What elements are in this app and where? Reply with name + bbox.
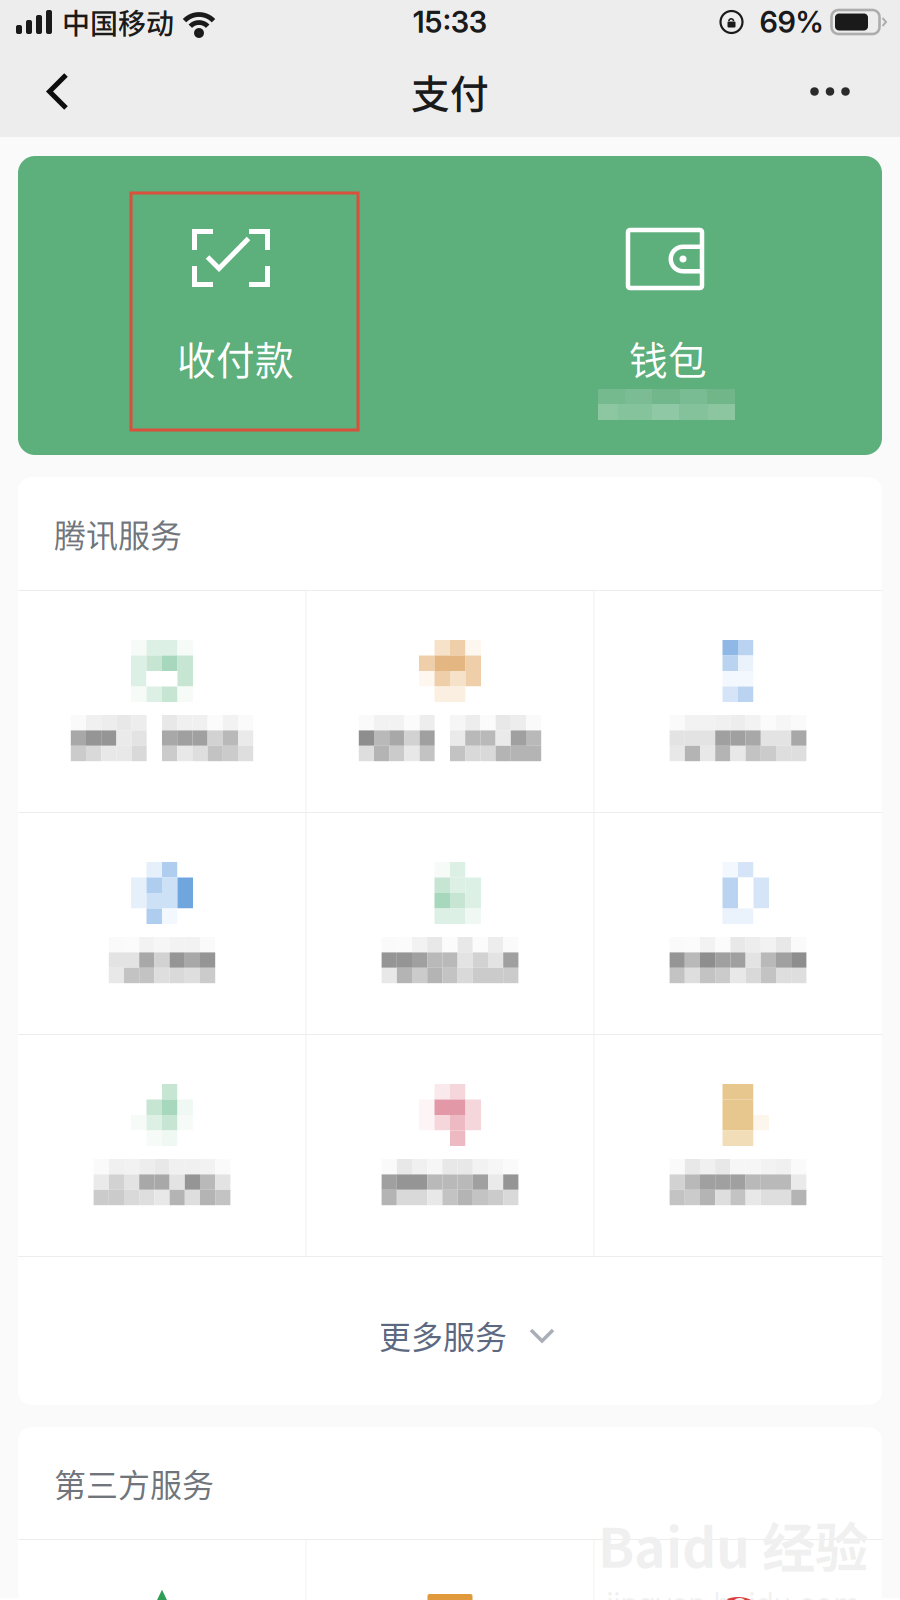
button[interactable]: 更多服务	[18, 1257, 882, 1405]
staticText: 腾讯服务	[54, 510, 182, 557]
button[interactable]: Back	[0, 52, 115, 130]
staticText: Baidu 经验	[598, 1506, 868, 1583]
button[interactable]	[306, 1035, 593, 1256]
button[interactable]: 钱包	[552, 193, 779, 430]
button[interactable]: Service	[594, 1540, 881, 1600]
staticText: 支付	[411, 63, 489, 119]
button[interactable]	[594, 591, 881, 812]
staticText: 第三方服务	[54, 1460, 214, 1506]
button[interactable]	[306, 813, 593, 1034]
button[interactable]	[594, 813, 881, 1034]
button[interactable]	[306, 591, 593, 812]
staticText: 69%	[759, 4, 823, 40]
staticText: 中国移动	[62, 2, 174, 42]
staticText: 15:33	[413, 4, 487, 40]
button[interactable]	[18, 813, 305, 1034]
button[interactable]: Service	[306, 1540, 593, 1600]
button[interactable]: Service	[18, 1540, 305, 1600]
button[interactable]	[594, 1035, 881, 1256]
button[interactable]: More	[791, 52, 900, 130]
staticText: 钱包	[629, 330, 707, 386]
button[interactable]: 收付款	[131, 193, 358, 430]
staticText: 收付款	[177, 330, 294, 386]
button[interactable]	[18, 1035, 305, 1256]
button[interactable]	[18, 591, 305, 812]
staticText: jingyan.baidu.com	[606, 1585, 859, 1600]
staticText: 更多服务	[379, 1312, 507, 1358]
